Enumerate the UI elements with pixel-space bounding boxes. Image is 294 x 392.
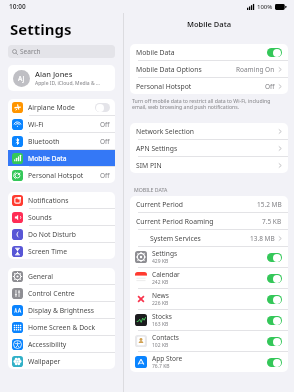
button[interactable]: Search xyxy=(8,45,115,58)
button[interactable]: General xyxy=(8,268,115,284)
staticText: Network Selection xyxy=(136,127,278,136)
staticText: 100% xyxy=(257,3,273,11)
staticText: 226 KB xyxy=(152,300,169,307)
staticText: Personal Hotspot xyxy=(28,171,100,180)
staticText: Mobile Data xyxy=(187,19,232,29)
button[interactable]: On xyxy=(267,295,282,304)
button[interactable]: On xyxy=(267,316,282,325)
staticText: 15.2 MB xyxy=(257,200,282,209)
button[interactable]: Do Not Disturb xyxy=(8,226,115,242)
button[interactable]: Display & Brightness xyxy=(8,302,115,318)
staticText: Airplane Mode xyxy=(28,103,95,112)
staticText: 10:00 xyxy=(9,2,26,11)
staticText: Current Period Roaming xyxy=(136,217,262,226)
staticText: Notifications xyxy=(28,196,110,205)
button[interactable]: News xyxy=(130,289,288,309)
staticText: Sounds xyxy=(28,213,110,222)
staticText: System Services xyxy=(150,234,250,243)
staticText: Contacts xyxy=(152,333,180,342)
staticText: Wallpaper xyxy=(28,357,110,366)
button[interactable]: Stocks xyxy=(130,310,288,330)
button[interactable]: On xyxy=(267,358,282,367)
button[interactable]: Settings xyxy=(130,247,288,267)
staticText: General xyxy=(28,272,110,281)
staticText: Stocks xyxy=(152,312,172,321)
staticText: Off xyxy=(100,171,110,180)
button[interactable]: Personal Hotspot xyxy=(130,78,288,94)
staticText: News xyxy=(152,291,169,300)
button[interactable]: On xyxy=(267,253,282,262)
staticText: Off xyxy=(100,137,110,146)
staticText: Apple ID, iCloud, Media & ... xyxy=(35,80,100,87)
staticText: Alan Jones xyxy=(35,69,73,79)
button[interactable]: Accessibility xyxy=(8,336,115,352)
button[interactable]: SIM PIN xyxy=(130,157,288,173)
staticText: 102 KB xyxy=(152,342,169,349)
button[interactable]: Mobile Data Options xyxy=(130,61,288,77)
staticText: Do Not Disturb xyxy=(28,230,110,239)
staticText: Personal Hotspot xyxy=(136,82,265,91)
button[interactable]: Home Screen & Dock xyxy=(8,319,115,335)
staticText: 76.7 KB xyxy=(152,363,170,370)
button[interactable]: Network Selection xyxy=(130,123,288,139)
button[interactable]: Contacts xyxy=(130,331,288,351)
button[interactable]: Wallpaper xyxy=(8,353,115,369)
button[interactable]: Off xyxy=(95,103,110,112)
button[interactable]: Airplane Mode xyxy=(8,99,115,115)
staticText: 429 KB xyxy=(152,258,169,265)
button[interactable]: Calendar xyxy=(130,268,288,288)
staticText: 242 KB xyxy=(152,279,169,286)
button[interactable]: Mobile Data xyxy=(8,150,115,166)
button[interactable]: On xyxy=(267,274,282,283)
staticText: Calendar xyxy=(152,270,180,279)
staticText: Settings xyxy=(10,19,72,39)
staticText: Control Centre xyxy=(28,289,110,298)
button[interactable]: On xyxy=(267,337,282,346)
staticText: Home Screen & Dock xyxy=(28,323,110,332)
staticText: Screen Time xyxy=(28,247,110,256)
staticText: Mobile Data xyxy=(28,154,110,163)
staticText: Accessibility xyxy=(28,340,110,349)
staticText: 13.8 MB xyxy=(250,234,275,243)
staticText: Off xyxy=(265,82,275,91)
button[interactable]: Bluetooth xyxy=(8,133,115,149)
button[interactable]: App Store xyxy=(130,352,288,372)
button[interactable]: Control Centre xyxy=(8,285,115,301)
staticText: AJ xyxy=(18,74,25,83)
staticText: Off xyxy=(100,120,110,129)
button[interactable]: System Services xyxy=(130,230,288,246)
button[interactable]: Current Period xyxy=(130,196,288,212)
button[interactable]: Mobile Data xyxy=(130,44,288,60)
staticText: APN Settings xyxy=(136,144,278,153)
button[interactable]: Wi-Fi xyxy=(8,116,115,132)
staticText: Bluetooth xyxy=(28,137,100,146)
button[interactable]: Current Period Roaming xyxy=(130,213,288,229)
staticText: Turn off mobile data to restrict all dat… xyxy=(132,97,271,111)
button[interactable]: AJ xyxy=(8,65,115,91)
button[interactable]: Notifications xyxy=(8,192,115,208)
button[interactable]: APN Settings xyxy=(130,140,288,156)
staticText: 7.5 KB xyxy=(262,217,282,226)
button[interactable]: Personal Hotspot xyxy=(8,167,115,183)
staticText: Mobile Data xyxy=(136,48,267,57)
staticText: Display & Brightness xyxy=(28,306,110,315)
staticText: Wi-Fi xyxy=(28,120,100,129)
button[interactable]: On xyxy=(267,48,282,57)
staticText: Settings xyxy=(152,249,178,258)
staticText: MOBILE DATA xyxy=(134,186,168,193)
staticText: Roaming On xyxy=(236,65,275,74)
button[interactable]: Sounds xyxy=(8,209,115,225)
button[interactable]: Screen Time xyxy=(8,243,115,259)
staticText: App Store xyxy=(152,354,183,363)
staticText: Current Period xyxy=(136,200,257,209)
staticText: SIM PIN xyxy=(136,161,278,170)
staticText: Search xyxy=(20,47,41,56)
staticText: 163 KB xyxy=(152,321,169,328)
staticText: Mobile Data Options xyxy=(136,65,236,74)
